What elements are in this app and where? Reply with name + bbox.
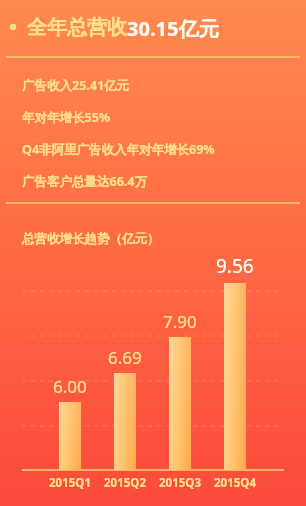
button[interactable]: 全年总营收报告图表 (0, 0, 306, 506)
